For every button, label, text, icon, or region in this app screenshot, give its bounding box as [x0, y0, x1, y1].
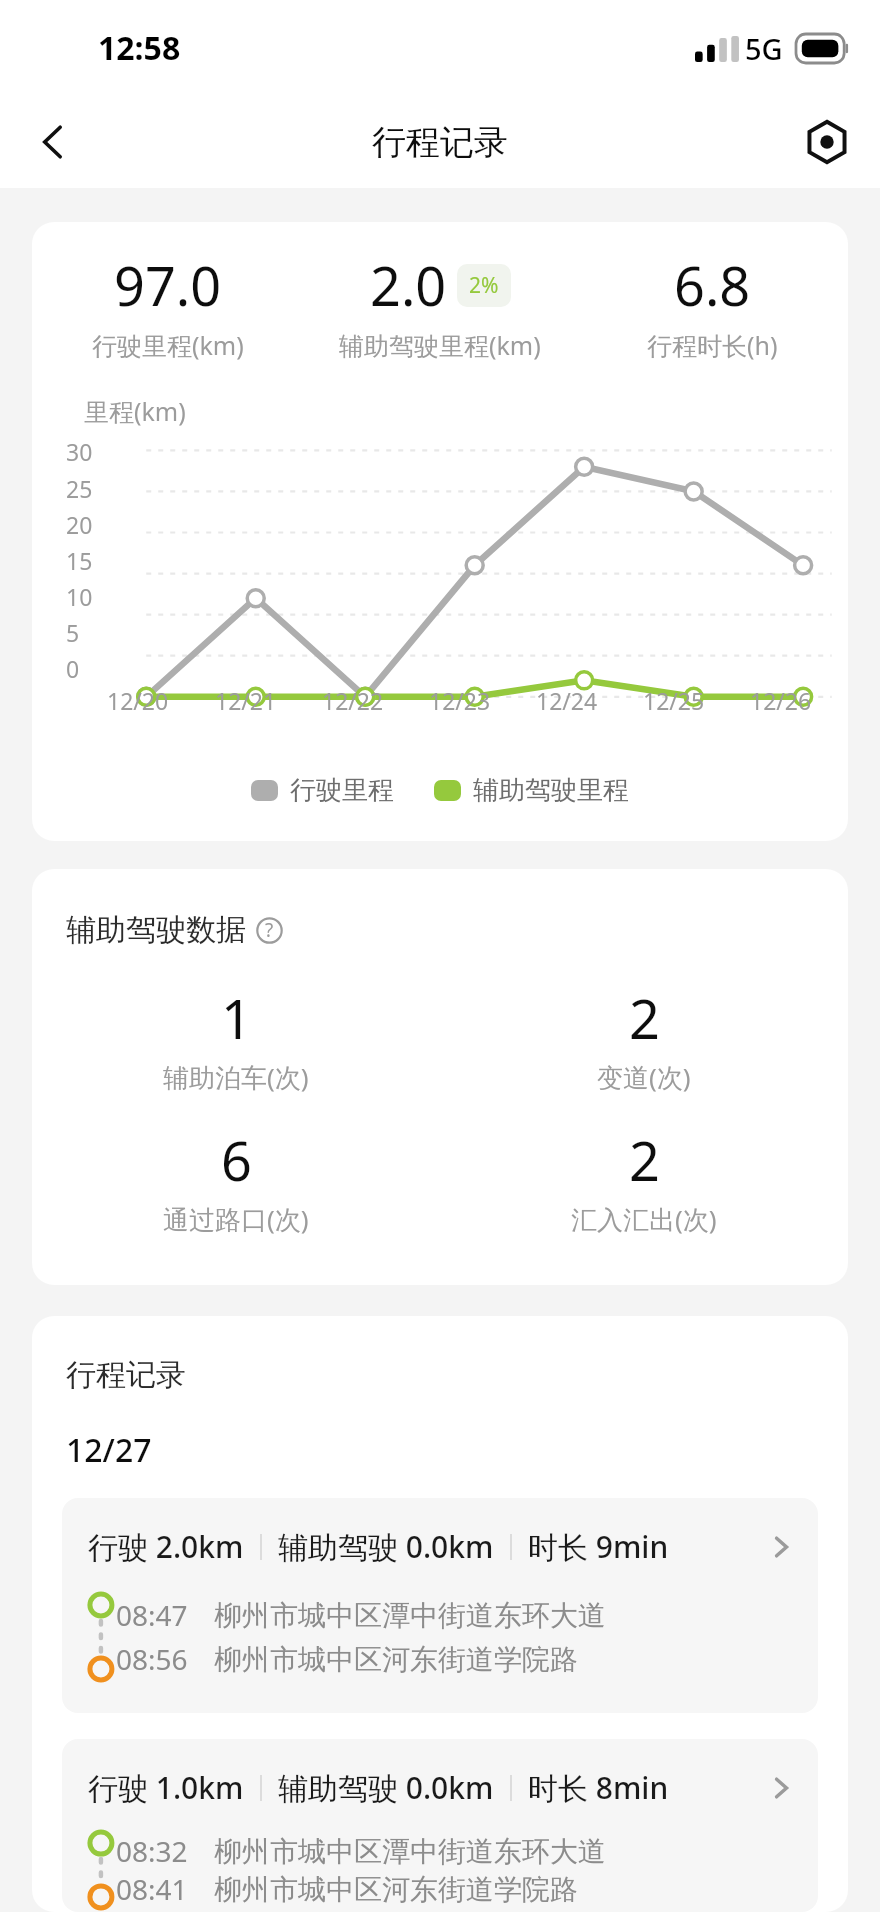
staticText: ?: [265, 917, 274, 943]
staticText: 12/23: [429, 685, 491, 716]
staticText: 20: [66, 509, 93, 540]
staticText: 12/20: [107, 685, 169, 716]
staticText: 变道(次): [597, 1059, 691, 1095]
staticText: 辅助驾驶 0.0km: [278, 1767, 494, 1808]
staticText: 97.0: [114, 248, 222, 322]
staticText: 行驶里程: [290, 774, 394, 807]
staticText: 12/27: [66, 1428, 152, 1472]
staticText: 10: [66, 581, 93, 612]
staticText: 1: [221, 981, 252, 1055]
staticText: 08:47: [116, 1596, 188, 1634]
staticText: 2%: [469, 271, 499, 300]
staticText: 行驶 1.0km: [88, 1767, 244, 1808]
staticText: 2.0: [370, 248, 447, 322]
staticText: 行驶 2.0km: [88, 1526, 244, 1567]
staticText: 行驶里程(km): [92, 328, 244, 362]
staticText: 12/25: [643, 685, 705, 716]
staticText: 辅助泊车(次): [163, 1059, 309, 1095]
staticText: 5G: [745, 29, 783, 68]
staticText: 30: [66, 436, 93, 467]
button[interactable]: Back: [20, 109, 86, 175]
staticText: 柳州市城中区河东街道学院路: [214, 1642, 578, 1677]
staticText: 辅助驾驶 0.0km: [278, 1526, 494, 1567]
staticText: 12/26: [750, 685, 812, 716]
staticText: 汇入汇出(次): [571, 1201, 717, 1237]
staticText: 08:32: [116, 1832, 188, 1870]
staticText: 6.8: [674, 248, 751, 322]
staticText: 25: [66, 473, 93, 504]
staticText: 行程记录: [66, 1356, 186, 1394]
button[interactable]: Settings: [794, 109, 860, 175]
staticText: 15: [66, 545, 93, 576]
staticText: 12/24: [536, 685, 598, 716]
staticText: 08:41: [116, 1870, 188, 1908]
staticText: 6: [221, 1123, 252, 1197]
button[interactable]: 行驶 2.0km: [62, 1498, 818, 1713]
button[interactable]: Help: [254, 915, 284, 945]
staticText: 08:56: [116, 1640, 188, 1678]
staticText: 柳州市城中区河东街道学院路: [214, 1872, 578, 1907]
staticText: 柳州市城中区潭中街道东环大道: [214, 1598, 606, 1633]
staticText: 辅助驾驶数据: [66, 911, 246, 949]
staticText: 时长 8min: [528, 1767, 669, 1808]
staticText: 12:58: [98, 26, 181, 70]
staticText: 2: [629, 981, 660, 1055]
staticText: 12/22: [322, 685, 384, 716]
staticText: 柳州市城中区潭中街道东环大道: [214, 1834, 606, 1869]
staticText: 行程时长(h): [647, 328, 778, 362]
staticText: 0: [66, 653, 80, 684]
staticText: 时长 9min: [528, 1526, 669, 1567]
staticText: 12/21: [215, 685, 277, 716]
staticText: 辅助驾驶里程(km): [339, 328, 541, 362]
button[interactable]: 行驶 1.0km: [62, 1739, 818, 1912]
staticText: 5: [66, 617, 80, 648]
staticText: 通过路口(次): [163, 1201, 309, 1237]
staticText: 辅助驾驶里程: [473, 774, 629, 807]
staticText: 行程记录: [372, 121, 508, 164]
staticText: 里程(km): [84, 394, 186, 428]
staticText: 2: [629, 1123, 660, 1197]
